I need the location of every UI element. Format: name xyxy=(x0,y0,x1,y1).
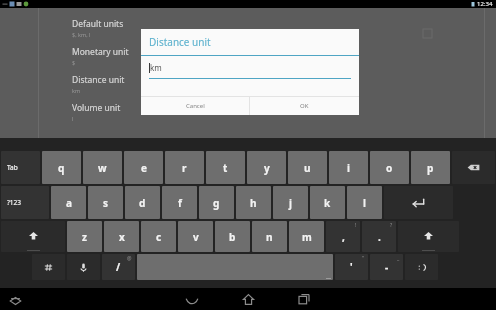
button[interactable]: k xyxy=(310,186,345,219)
button[interactable]: p xyxy=(411,151,450,184)
button[interactable]: h xyxy=(236,186,271,219)
button[interactable]: r xyxy=(165,151,204,184)
staticText: Tab xyxy=(7,163,18,172)
button[interactable]: g xyxy=(199,186,234,219)
staticText: . xyxy=(378,230,381,244)
staticText: p xyxy=(427,161,434,175)
staticText: 12:34 xyxy=(477,0,493,8)
staticText: ! xyxy=(355,222,357,229)
button[interactable]: f xyxy=(162,186,197,219)
button[interactable]: Emoji xyxy=(405,254,438,280)
staticText: Distance unit xyxy=(72,74,125,86)
button[interactable]: OK xyxy=(250,97,359,115)
staticText: @ xyxy=(127,255,132,262)
button[interactable]: Monetary unit xyxy=(72,42,484,70)
staticText: _ xyxy=(397,255,400,262)
staticText: o xyxy=(386,161,393,175)
staticText: k xyxy=(324,196,331,210)
staticText: q xyxy=(58,161,65,175)
staticText: " xyxy=(362,255,365,262)
button[interactable]: Tab xyxy=(1,151,40,184)
button[interactable]: Voice input xyxy=(67,254,100,280)
staticText: s xyxy=(103,196,109,210)
button[interactable]: y xyxy=(247,151,286,184)
button[interactable]: i xyxy=(329,151,368,184)
staticText: y xyxy=(264,161,270,175)
button[interactable]: . xyxy=(362,221,396,252)
staticText: g xyxy=(213,196,220,210)
button[interactable]: l xyxy=(347,186,382,219)
staticText: i xyxy=(347,161,350,175)
button[interactable]: Distance unit xyxy=(72,70,484,98)
button[interactable]: Cancel xyxy=(141,97,249,115)
button[interactable]: j xyxy=(273,186,308,219)
staticText: w xyxy=(98,161,107,175)
button[interactable]: z xyxy=(67,221,102,252)
staticText: Cancel xyxy=(186,102,205,110)
button[interactable]: v xyxy=(178,221,213,252)
staticText: x xyxy=(119,230,125,244)
button[interactable]: a xyxy=(51,186,86,219)
staticText: l xyxy=(363,196,366,210)
button[interactable]: ?123 xyxy=(1,186,49,219)
button[interactable]: w xyxy=(83,151,122,184)
staticText: / xyxy=(116,260,121,274)
button[interactable]: - xyxy=(370,254,403,280)
button[interactable]: Volume unit xyxy=(72,98,484,126)
button[interactable]: Recent apps xyxy=(295,290,313,308)
staticText: - xyxy=(385,260,389,274)
staticText: Volume unit xyxy=(72,102,121,114)
button[interactable]: / xyxy=(102,254,135,280)
staticText: z xyxy=(82,230,87,244)
button[interactable]: Shift xyxy=(398,221,459,252)
button[interactable]: , xyxy=(326,221,360,252)
staticText: t xyxy=(223,161,228,175)
staticText: d xyxy=(139,196,146,210)
staticText: Monetary unit xyxy=(72,46,129,58)
staticText: a xyxy=(66,196,72,210)
staticText: km xyxy=(150,62,162,73)
staticText: u xyxy=(304,161,311,175)
button[interactable]: Back xyxy=(183,290,201,308)
staticText: e xyxy=(141,161,147,175)
button[interactable]: c xyxy=(141,221,176,252)
button[interactable]: s xyxy=(88,186,123,219)
staticText: r xyxy=(182,161,187,175)
staticText: Default units xyxy=(72,18,124,30)
button[interactable]: ' xyxy=(335,254,368,280)
button[interactable]: u xyxy=(288,151,327,184)
button[interactable]: d xyxy=(125,186,160,219)
button[interactable]: Switch language xyxy=(32,254,65,280)
button[interactable]: n xyxy=(252,221,287,252)
staticText: ' xyxy=(350,260,353,274)
button[interactable]: Hide keyboard xyxy=(8,292,22,306)
staticText: h xyxy=(250,196,257,210)
staticText: f xyxy=(178,196,182,210)
staticText: b xyxy=(229,230,236,244)
staticText: j xyxy=(289,196,292,210)
button[interactable]: q xyxy=(42,151,81,184)
staticText: v xyxy=(193,230,199,244)
button[interactable]: b xyxy=(215,221,250,252)
staticText: $, km, l xyxy=(72,31,91,38)
button[interactable]: Shift xyxy=(1,221,65,252)
button[interactable]: o xyxy=(370,151,409,184)
staticText: l xyxy=(72,115,74,122)
button[interactable]: e xyxy=(124,151,163,184)
staticText: ? xyxy=(390,222,393,229)
button[interactable]: Default units xyxy=(72,14,484,42)
button[interactable]: m xyxy=(289,221,324,252)
button[interactable]: x xyxy=(104,221,139,252)
staticText: c xyxy=(156,230,162,244)
staticText: OK xyxy=(300,102,309,110)
button[interactable]: Home xyxy=(239,290,257,308)
staticText: m xyxy=(302,230,312,244)
staticText: Distance unit xyxy=(149,35,211,49)
staticText: km xyxy=(72,87,81,94)
button[interactable]: Backspace xyxy=(452,151,495,184)
button[interactable]: Enter xyxy=(384,186,453,219)
staticText: , xyxy=(342,230,345,244)
button[interactable]: t xyxy=(206,151,245,184)
staticText: ?123 xyxy=(7,198,21,207)
